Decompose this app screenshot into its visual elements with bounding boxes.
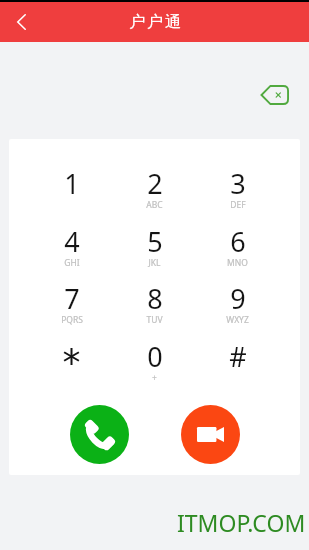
button[interactable]: 6 — [196, 213, 279, 271]
staticText: 7 — [64, 280, 80, 317]
staticText: 4 — [64, 223, 80, 260]
button[interactable]: 0 — [113, 328, 196, 386]
staticText: GHI — [64, 257, 80, 269]
staticText: TUV — [146, 314, 163, 326]
button[interactable]: 4 — [30, 213, 113, 271]
staticText: WXYZ — [226, 314, 249, 326]
staticText: 5 — [147, 223, 163, 260]
button[interactable]: Delete — [253, 74, 295, 116]
button[interactable]: Video call — [181, 405, 240, 464]
button[interactable]: 5 — [113, 213, 196, 271]
staticText: 1 — [64, 165, 80, 202]
button[interactable]: 7 — [30, 270, 113, 328]
staticText: 8 — [147, 280, 163, 317]
button[interactable]: Back — [0, 2, 42, 42]
button[interactable]: 9 — [196, 270, 279, 328]
button[interactable]: # — [196, 328, 279, 386]
staticText: 9 — [230, 280, 246, 317]
button[interactable]: 2 — [113, 155, 196, 213]
button[interactable] — [30, 328, 113, 386]
staticText: 0 — [147, 338, 163, 375]
staticText: DEF — [230, 199, 246, 211]
staticText: # — [229, 338, 247, 375]
button[interactable]: 1 — [30, 155, 113, 213]
staticText: 6 — [230, 223, 246, 260]
button[interactable]: 8 — [113, 270, 196, 328]
staticText: ITMOP.COM — [177, 507, 306, 538]
button[interactable]: Call — [70, 405, 129, 464]
button[interactable]: 3 — [196, 155, 279, 213]
staticText: 户户通 — [129, 12, 183, 32]
staticText: + — [152, 372, 157, 384]
staticText: MNO — [227, 257, 248, 269]
staticText: PQRS — [61, 314, 83, 326]
staticText: ABC — [146, 199, 163, 211]
staticText: 2 — [147, 165, 163, 202]
staticText: JKL — [148, 257, 161, 269]
staticText: 3 — [230, 165, 246, 202]
